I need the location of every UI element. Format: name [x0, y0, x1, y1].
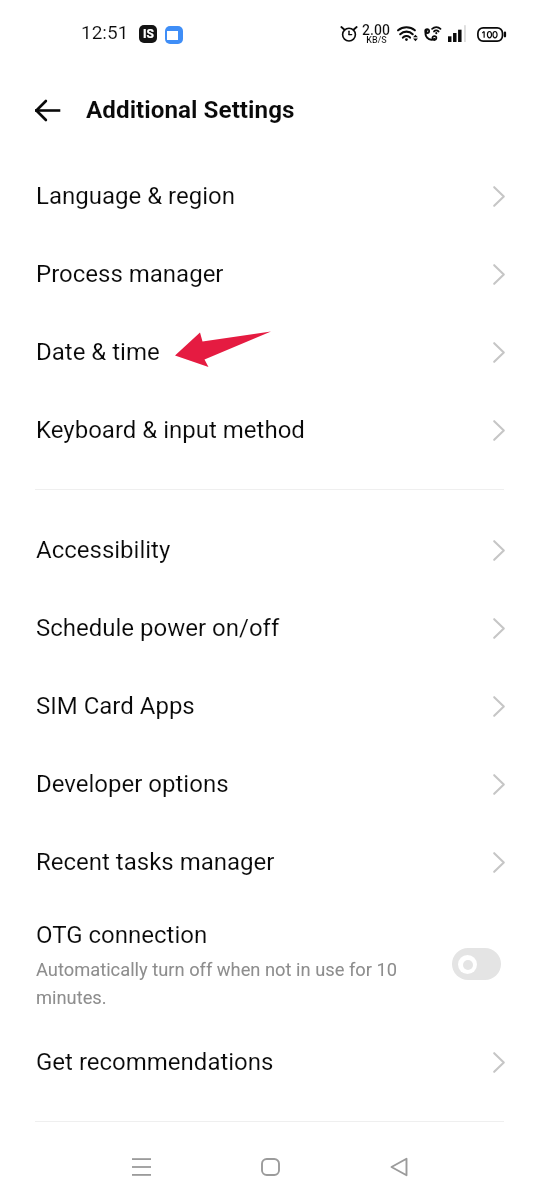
button[interactable]: Home — [236, 1133, 304, 1200]
button[interactable]: Developer options — [0, 745, 540, 823]
button[interactable]: Accessibility — [0, 511, 540, 589]
button[interactable]: OTG connection — [0, 897, 540, 1009]
staticText: OTG connection — [36, 921, 208, 949]
staticText: Get recommendations — [36, 1048, 274, 1076]
staticText: Additional Settings — [86, 95, 295, 123]
button[interactable]: Schedule power on/off — [0, 589, 540, 667]
button[interactable]: Language & region — [0, 157, 540, 235]
staticText: Developer options — [36, 770, 229, 798]
staticText: Automatically turn off when not in use f… — [36, 959, 408, 1009]
staticText: 12:51 — [81, 21, 129, 43]
staticText: Process manager — [36, 260, 224, 288]
staticText: SIM Card Apps — [36, 692, 195, 720]
staticText: KB/S — [366, 35, 387, 46]
staticText: Language & region — [36, 182, 235, 210]
button[interactable]: Date & time — [0, 313, 540, 391]
staticText: Accessibility — [36, 536, 171, 564]
button[interactable]: Get recommendations — [0, 1023, 540, 1101]
staticText: 2.00 — [362, 22, 390, 38]
button[interactable]: OTG connection toggle — [452, 948, 501, 980]
button[interactable]: Back — [20, 83, 74, 137]
button[interactable]: SIM Card Apps — [0, 667, 540, 745]
staticText: IS — [143, 27, 154, 41]
staticText: Recent tasks manager — [36, 848, 275, 876]
button[interactable]: Back — [365, 1133, 433, 1200]
button[interactable]: Recent apps — [107, 1133, 175, 1200]
staticText: Schedule power on/off — [36, 614, 280, 642]
staticText: Keyboard & input method — [36, 416, 305, 444]
button[interactable]: Keyboard & input method — [0, 391, 540, 469]
button[interactable]: Process manager — [0, 235, 540, 313]
button[interactable]: Recent tasks manager — [0, 823, 540, 901]
staticText: Date & time — [36, 338, 160, 366]
